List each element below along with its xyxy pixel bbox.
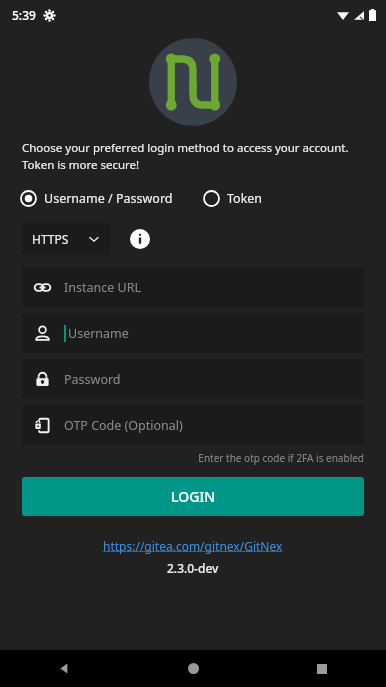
button[interactable]: OTP Code (Optional) <box>22 405 364 445</box>
button[interactable]: LOGIN <box>22 477 364 516</box>
staticText: HTTPS <box>32 231 69 247</box>
staticText: Choose your preferred login method to ac… <box>22 140 364 172</box>
button[interactable]: Recent apps <box>300 650 344 687</box>
button[interactable]: Username / Password <box>18 186 175 211</box>
staticText: Username / Password <box>44 190 173 207</box>
staticText: OTP Code (Optional) <box>64 417 183 434</box>
button[interactable]: Token <box>201 186 265 211</box>
staticText: Instance URL <box>64 279 141 296</box>
button[interactable]: Home <box>171 650 215 687</box>
staticText: Token <box>227 190 263 207</box>
staticText: 5:39 <box>12 7 36 23</box>
button[interactable]: Password <box>22 359 364 399</box>
button[interactable]: HTTPS <box>22 223 110 255</box>
button[interactable]: Back <box>42 650 86 687</box>
staticText: LOGIN <box>171 487 216 506</box>
button[interactable]: Instance URL <box>22 267 364 307</box>
button[interactable]: https://gitea.com/gitnex/GitNex <box>103 538 283 554</box>
staticText: Username <box>68 325 129 342</box>
staticText: Enter the otp code if 2FA is enabled <box>22 451 364 465</box>
staticText: 2.3.0-dev <box>167 560 219 576</box>
button[interactable]: Username <box>22 313 364 353</box>
button[interactable]: Information about protocol <box>126 225 154 253</box>
staticText: Password <box>64 371 121 388</box>
